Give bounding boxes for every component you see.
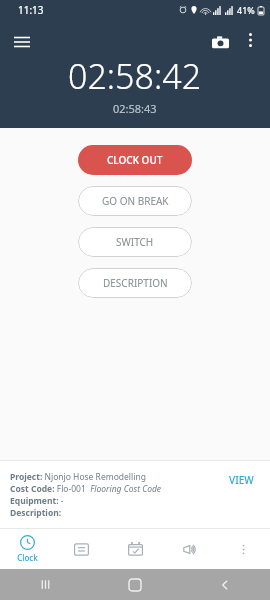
button[interactable]: More options [238,28,262,52]
button[interactable]: Clock [0,535,54,563]
button[interactable]: Camera [206,28,234,56]
staticText: Clock [17,552,38,563]
staticText: 11:13 [18,3,44,17]
staticText: SWITCH [116,235,154,249]
staticText: 02:58:43 [113,101,157,116]
staticText: Equipment: - [10,495,64,507]
button[interactable]: SWITCH [78,227,192,257]
button[interactable]: GO ON BREAK [78,186,192,216]
staticText: CLOCK OUT [107,153,163,167]
button[interactable]: Calendar [108,542,162,557]
button[interactable]: VIEW [225,469,258,491]
staticText: Description: [10,507,62,519]
button[interactable]: Announcements [162,542,216,557]
staticText: VIEW [229,473,254,487]
staticText: Project: Njonjo Hose Remodelling [10,471,146,483]
staticText: 41% [237,4,255,16]
button[interactable]: CLOCK OUT [78,145,192,175]
button[interactable]: DESCRIPTION [78,268,192,298]
staticText: 02:58:42 [68,53,202,99]
button[interactable]: Timesheet [54,542,108,557]
staticText: DESCRIPTION [103,276,168,290]
button[interactable]: More [216,542,270,557]
staticText: GO ON BREAK [102,194,169,208]
button[interactable]: Menu [8,28,36,56]
staticText: Cost Code: Flo-001 Flooring Cost Code [10,483,162,495]
